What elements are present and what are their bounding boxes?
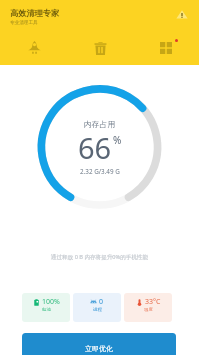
button[interactable]: 立即优化 bbox=[22, 333, 176, 355]
button[interactable]: Warning bbox=[175, 7, 189, 21]
staticText: 温度 bbox=[144, 307, 153, 313]
staticText: 立即优化 bbox=[85, 344, 113, 353]
staticText: 33°C bbox=[145, 297, 161, 307]
staticText: 内存占用 bbox=[84, 119, 116, 129]
staticText: 专业清理工具 bbox=[10, 20, 38, 26]
staticText: 进程 bbox=[93, 307, 102, 313]
staticText: 2.32 G/3.49 G bbox=[80, 167, 120, 176]
button[interactable]: 0 bbox=[73, 293, 121, 322]
button[interactable]: Apps bbox=[155, 34, 179, 58]
staticText: % bbox=[113, 133, 122, 147]
staticText: 66 bbox=[78, 128, 112, 167]
staticText: 0 bbox=[99, 297, 104, 307]
staticText: 高效清理专家 bbox=[10, 8, 60, 18]
staticText: 100% bbox=[42, 297, 60, 307]
button[interactable]: Boost bbox=[22, 35, 46, 59]
button[interactable]: Clean bbox=[88, 36, 112, 60]
staticText: 通过释放 0 B 内存将提升0%的手机性能 bbox=[0, 253, 199, 261]
button[interactable]: 100% bbox=[22, 293, 70, 322]
staticText: 电池 bbox=[42, 307, 51, 313]
button[interactable]: 33°C bbox=[124, 293, 172, 322]
